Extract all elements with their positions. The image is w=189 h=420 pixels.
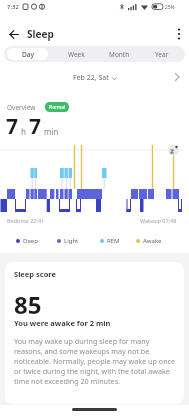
staticText: Week	[68, 50, 85, 59]
button[interactable]: Month	[101, 46, 137, 62]
staticText: Normal	[49, 104, 65, 110]
staticText: Sleep	[27, 27, 54, 41]
staticText: Feb 22, Sat	[73, 73, 109, 83]
button[interactable]: Sleep score	[5, 262, 184, 404]
staticText: Day	[22, 50, 34, 59]
button[interactable]	[170, 70, 184, 84]
button[interactable]: Year	[144, 46, 180, 62]
staticText: 25%	[165, 4, 175, 11]
staticText: Light	[64, 237, 79, 245]
staticText: You were awake for 2 min	[14, 318, 111, 328]
staticText: Year	[155, 50, 169, 59]
staticText: REM	[107, 237, 120, 245]
staticText: Awake	[143, 237, 162, 245]
staticText: Deep	[23, 237, 38, 245]
staticText: Month	[109, 50, 130, 59]
staticText: You may wake up during sleep for many re…	[14, 336, 176, 386]
button[interactable]	[171, 26, 187, 42]
button[interactable]	[6, 26, 22, 42]
staticText: Overview	[7, 103, 36, 112]
staticText: 7:32	[7, 3, 19, 11]
staticText: 85	[14, 288, 42, 321]
staticText: 7	[6, 112, 19, 141]
staticText: h	[21, 126, 26, 137]
staticText: min	[44, 126, 59, 137]
staticText: Sleep score	[14, 269, 57, 279]
staticText: Bedtime 22:41	[7, 217, 45, 224]
staticText: 7	[29, 112, 42, 141]
button[interactable]: Feb 22, Sat	[73, 73, 117, 83]
staticText: Wakeup 07:48	[140, 217, 177, 224]
button[interactable]: Day	[7, 48, 48, 60]
button[interactable]: Week	[58, 46, 94, 62]
